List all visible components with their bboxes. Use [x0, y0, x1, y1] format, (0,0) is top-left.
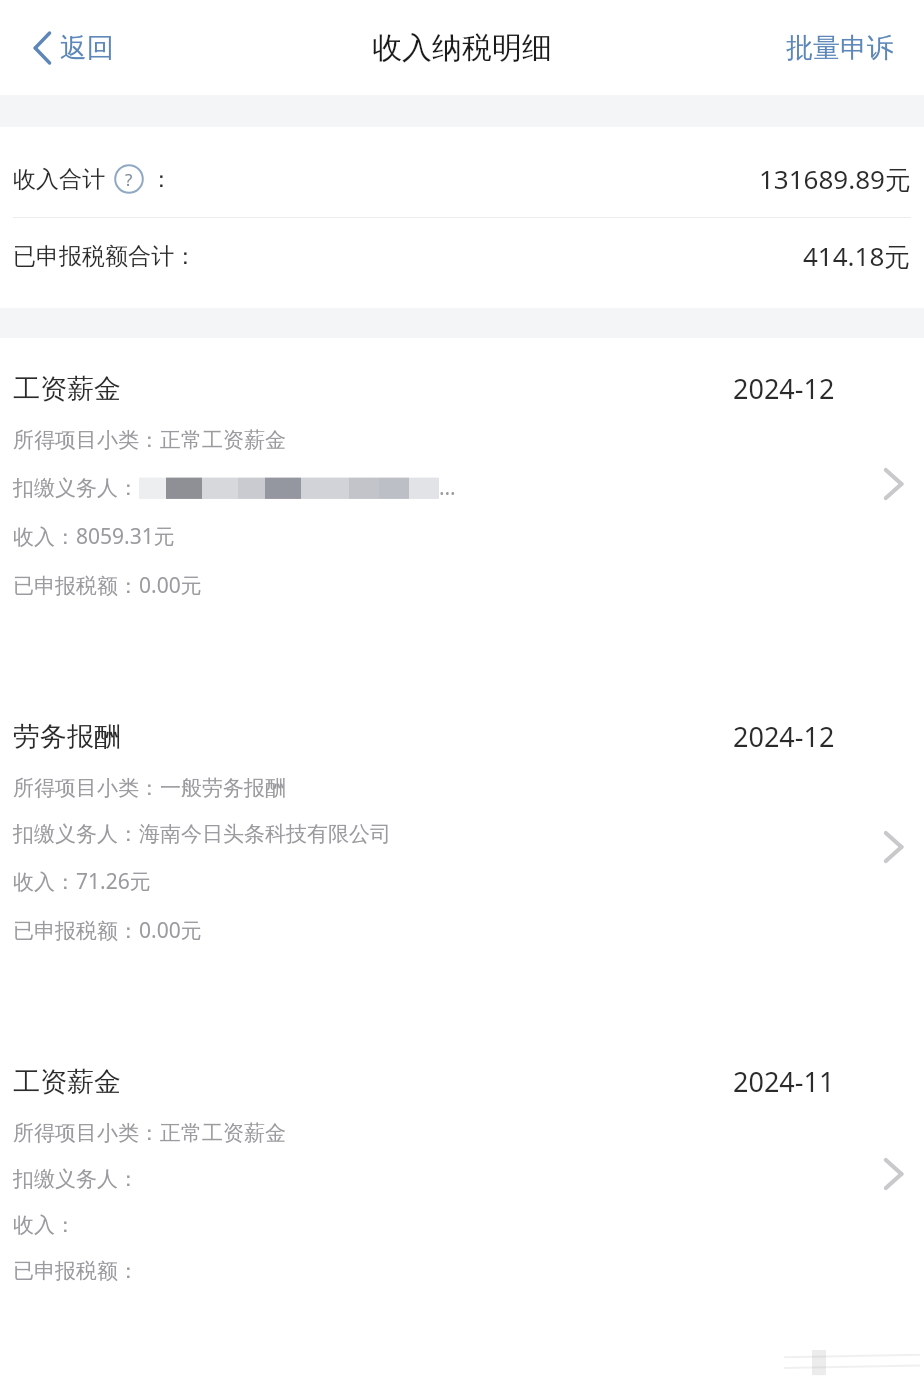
staticText: 收入： — [13, 1212, 76, 1238]
staticText: 收入：71.26元 — [13, 867, 151, 896]
staticText: 所得项目小类：正常工资薪金 — [13, 1120, 286, 1146]
staticText: 批量申诉 — [786, 31, 894, 65]
button[interactable]: 工资薪金 — [0, 338, 924, 630]
staticText: 2024-12 — [733, 370, 835, 407]
staticText: ： — [150, 165, 173, 194]
staticText: 所得项目小类：正常工资薪金 — [13, 427, 286, 453]
staticText: 劳务报酬 — [13, 720, 121, 754]
staticText: 已申报税额：0.00元 — [13, 571, 202, 600]
staticText: 扣缴义务人： — [13, 475, 139, 501]
staticText: 已申报税额：0.00元 — [13, 916, 202, 945]
staticText: 工资薪金 — [13, 372, 121, 406]
button[interactable]: 工资薪金 — [0, 1063, 924, 1284]
staticText: 工资薪金 — [13, 1065, 121, 1099]
button[interactable]: 劳务报酬 — [0, 718, 924, 975]
staticText: 扣缴义务人：海南今日头条科技有限公司 — [13, 821, 391, 847]
staticText: … — [439, 473, 456, 502]
staticText: 所得项目小类：一般劳务报酬 — [13, 775, 286, 801]
staticText: 扣缴义务人： — [13, 1166, 139, 1192]
staticText: 已申报税额合计： — [13, 242, 197, 271]
staticText: 2024-11 — [733, 1063, 835, 1100]
button[interactable]: 批量申诉 — [782, 23, 898, 73]
staticText: ? — [125, 168, 133, 191]
button[interactable]: 返回 — [28, 23, 118, 73]
staticText: 收入：8059.31元 — [13, 522, 175, 551]
staticText: 2024-12 — [733, 718, 835, 755]
staticText: 收入合计 — [13, 165, 105, 194]
staticText: 已申报税额： — [13, 1258, 139, 1284]
staticText: 返回 — [60, 31, 114, 65]
staticText: 414.18元 — [803, 238, 911, 274]
staticText: 131689.89元 — [759, 161, 911, 197]
staticText: 收入纳税明细 — [372, 29, 552, 67]
